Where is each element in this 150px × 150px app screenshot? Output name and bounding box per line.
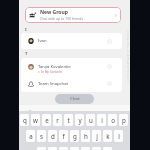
staticText: Team Snapchat	[38, 81, 69, 87]
staticText: C	[127, 34, 129, 36]
staticText: M	[127, 54, 129, 56]
staticText: S	[127, 66, 129, 68]
staticText: Z	[127, 80, 129, 82]
button[interactable]: s	[37, 130, 46, 142]
staticText: k	[106, 132, 110, 140]
staticText: U	[127, 70, 129, 72]
button[interactable]: o	[108, 114, 117, 126]
staticText: Chat with up to 100 friends	[40, 16, 84, 21]
staticText: t	[67, 116, 70, 124]
staticText: e	[45, 116, 49, 124]
staticText: New Group	[40, 9, 68, 16]
staticText: Chat	[70, 96, 80, 102]
staticText: i	[101, 116, 103, 124]
staticText: Tanya Kovalenko	[38, 64, 71, 70]
button[interactable]: h	[81, 130, 90, 142]
staticText: g	[73, 132, 77, 140]
staticText: f	[62, 132, 65, 140]
staticText: r	[56, 116, 59, 124]
button[interactable]: l	[114, 130, 123, 142]
staticText: w	[33, 116, 38, 124]
staticText: l	[118, 132, 120, 140]
staticText: j	[96, 132, 98, 140]
staticText: h	[84, 132, 88, 140]
button[interactable]: z	[37, 147, 46, 150]
staticText: Q	[127, 62, 129, 64]
staticText: O	[127, 58, 129, 60]
staticText: E	[127, 38, 129, 40]
staticText: T	[25, 51, 28, 56]
button[interactable]: w	[31, 114, 40, 126]
button[interactable]: p	[119, 114, 128, 126]
button[interactable]: d	[48, 130, 57, 142]
button[interactable]: Select	[107, 39, 112, 44]
button[interactable]: Ivan	[21, 33, 122, 49]
button[interactable]: j	[92, 130, 101, 142]
staticText: F	[127, 40, 129, 42]
staticText: K	[127, 50, 129, 52]
button[interactable]: t	[64, 114, 73, 126]
button[interactable]: New Group	[25, 7, 121, 23]
staticText: H	[127, 44, 129, 46]
staticText: W	[127, 74, 129, 76]
other: New Group	[113, 13, 118, 18]
other: Alphabet index	[125, 30, 130, 94]
button[interactable]: Select	[107, 64, 112, 69]
staticText: o	[111, 116, 115, 124]
button[interactable]: Chat	[55, 94, 94, 104]
staticText: D	[127, 36, 129, 38]
button[interactable]: e	[42, 114, 51, 126]
staticText: L	[127, 52, 129, 54]
button[interactable]: c	[59, 147, 68, 150]
button[interactable]: m	[103, 147, 112, 150]
button[interactable]: f	[59, 130, 68, 142]
staticText: q	[23, 116, 27, 124]
button[interactable]: Select	[107, 81, 112, 86]
staticText: R	[127, 64, 129, 66]
button[interactable]: r	[53, 114, 62, 126]
button[interactable]: q	[20, 114, 29, 126]
staticText: I	[127, 46, 128, 48]
button[interactable]: i	[97, 114, 106, 126]
button[interactable]: y	[75, 114, 84, 126]
staticText: p	[122, 116, 126, 124]
staticText: P	[127, 60, 129, 62]
button[interactable]: n	[92, 147, 101, 150]
staticText: T	[127, 68, 129, 70]
staticText: G	[127, 42, 129, 44]
staticText: J	[127, 48, 128, 50]
staticText: A	[127, 30, 129, 32]
staticText: Y	[127, 78, 129, 80]
button[interactable]: v	[70, 147, 79, 150]
staticText: y	[78, 116, 82, 124]
button[interactable]: a	[26, 130, 35, 142]
button[interactable]: u	[86, 114, 95, 126]
button[interactable]: k	[103, 130, 112, 142]
staticText: I	[25, 27, 27, 32]
staticText: s	[40, 132, 43, 140]
staticText: u	[89, 116, 93, 124]
staticText: a	[29, 132, 33, 140]
button[interactable]: g	[70, 130, 79, 142]
staticText: X	[127, 76, 129, 78]
button[interactable]: Team Snapchat	[21, 75, 122, 92]
staticText: In My Contacts	[41, 70, 62, 74]
button[interactable]: x	[48, 147, 57, 150]
button[interactable]: Tanya Kovalenko	[21, 58, 122, 75]
button[interactable]: b	[81, 147, 90, 150]
staticText: d	[51, 132, 55, 140]
staticText: N	[127, 56, 129, 58]
staticText: V	[127, 72, 129, 74]
staticText: Ivan	[38, 38, 47, 44]
staticText: B	[127, 32, 129, 34]
